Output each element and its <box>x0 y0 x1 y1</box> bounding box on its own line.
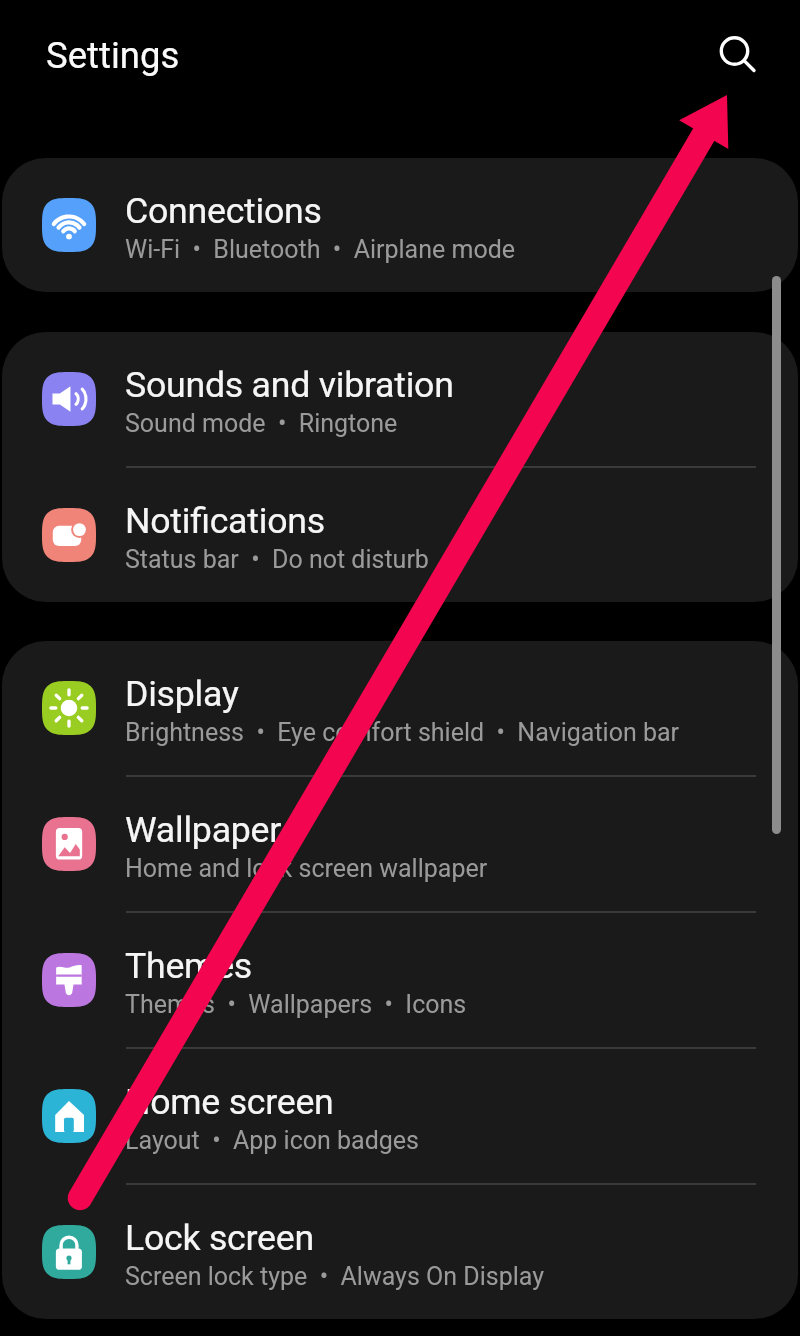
staticText: Wallpaper <box>125 809 282 851</box>
staticText: Screen lock type • Always On Display <box>125 1262 545 1291</box>
staticText: Wi-Fi • Bluetooth • Airplane mode <box>125 235 516 264</box>
staticText: Themes • Wallpapers • Icons <box>125 990 467 1019</box>
staticText: Sound mode • Ringtone <box>125 409 398 438</box>
staticText: Sounds and vibration <box>125 364 454 406</box>
staticText: Brightness • Eye comfort shield • Naviga… <box>125 718 680 747</box>
staticText: Notifications <box>125 500 325 542</box>
button[interactable]: Search <box>700 17 770 87</box>
button[interactable]: Sounds and vibration <box>2 332 798 466</box>
button[interactable]: Connections <box>2 158 798 292</box>
staticText: Connections <box>125 190 322 232</box>
staticText: Status bar • Do not disturb <box>125 545 429 574</box>
staticText: Lock screen <box>125 1217 314 1259</box>
staticText: Home screen <box>125 1081 334 1123</box>
staticText: Home and lock screen wallpaper <box>125 854 488 883</box>
button[interactable]: Notifications <box>2 468 798 602</box>
staticText: Themes <box>125 945 253 987</box>
button[interactable]: Lock screen <box>2 1185 798 1319</box>
button[interactable]: Home screen <box>2 1049 798 1183</box>
button[interactable]: Wallpaper <box>2 777 798 911</box>
staticText: Layout • App icon badges <box>125 1126 419 1155</box>
button[interactable]: Themes <box>2 913 798 1047</box>
staticText: Display <box>125 673 239 715</box>
staticText: Settings <box>46 34 180 77</box>
button[interactable]: Display <box>2 641 798 775</box>
